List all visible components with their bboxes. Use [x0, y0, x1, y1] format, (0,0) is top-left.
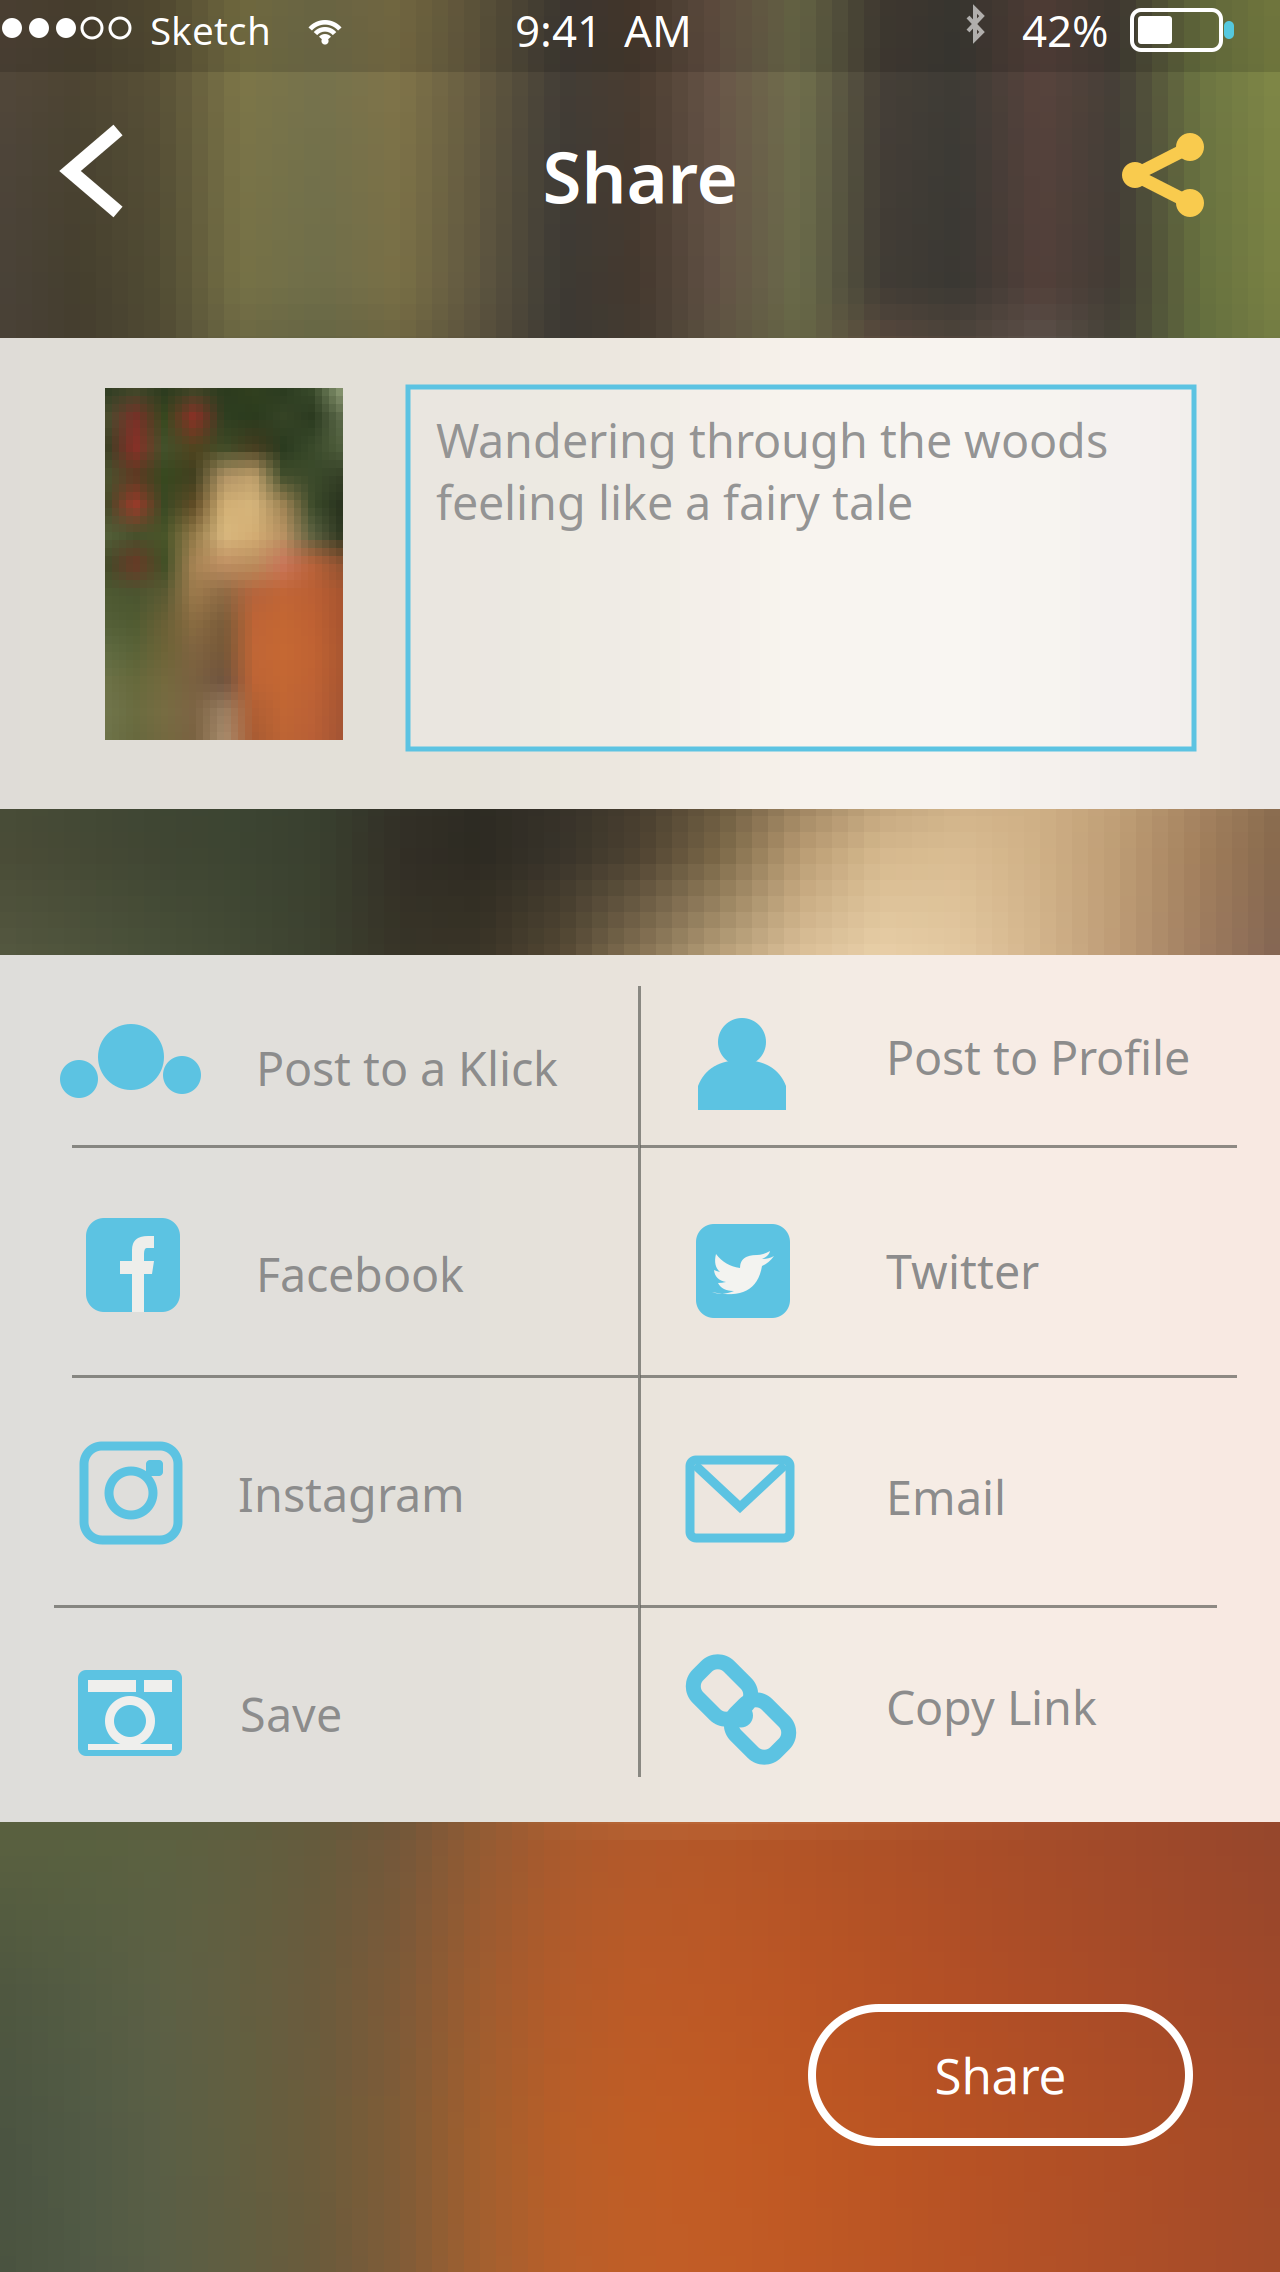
button[interactable]: Share [0, 0, 1280, 2272]
button[interactable]: Facebook [0, 0, 1280, 2272]
staticText: 42% [1022, 1, 1109, 59]
button[interactable]: Copy Link [0, 0, 1280, 2272]
staticText: Email [886, 1466, 1006, 1528]
button[interactable]: Wandering through the woods feeling like… [0, 0, 1280, 2272]
staticText: Twitter [886, 1240, 1039, 1302]
button[interactable]: Share [0, 0, 1280, 2272]
button[interactable]: Post to Profile [0, 0, 1280, 2272]
staticText: Wandering through the woods feeling like… [436, 409, 1108, 533]
button[interactable]: Post to a Klick [0, 0, 1280, 2272]
staticText: Share [542, 129, 737, 223]
staticText: Save [240, 1683, 342, 1745]
staticText: Post to a Klick [256, 1037, 558, 1099]
staticText: Instagram [238, 1463, 465, 1525]
button[interactable]: Save [0, 0, 1280, 2272]
button[interactable]: Twitter [0, 0, 1280, 2272]
staticText: Sketch [150, 4, 271, 56]
button[interactable]: Instagram [0, 0, 1280, 2272]
staticText: 9:41 AM [515, 1, 692, 59]
button[interactable]: Back [0, 0, 1280, 2272]
staticText: Copy Link [886, 1676, 1097, 1738]
staticText: Post to Profile [886, 1026, 1190, 1088]
staticText: Facebook [256, 1243, 464, 1305]
button[interactable]: Email [0, 0, 1280, 2272]
staticText: Share [934, 2042, 1066, 2108]
